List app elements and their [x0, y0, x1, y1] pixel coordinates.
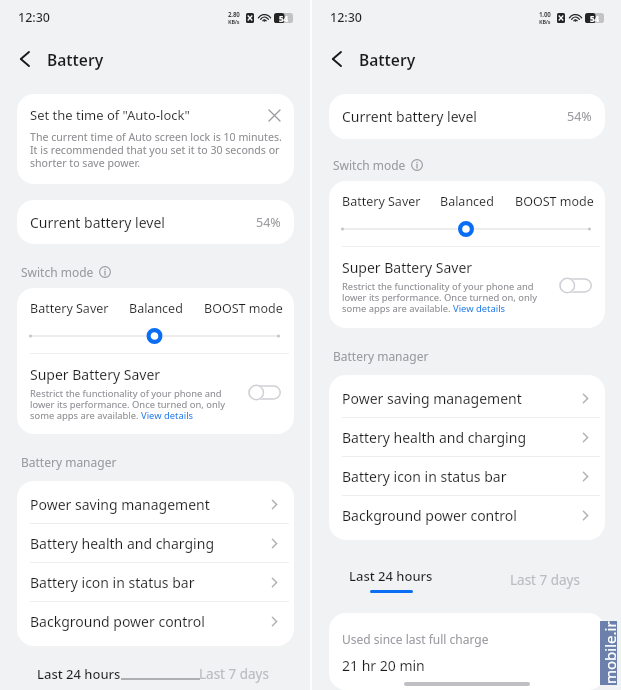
button[interactable]: Power saving management: [17, 485, 294, 524]
staticText: mobile.ir: [600, 621, 618, 684]
button[interactable]: Battery icon in status bar: [329, 457, 605, 496]
staticText: Restrict the functionality of your phone…: [30, 387, 225, 421]
button[interactable]: Back: [323, 45, 351, 73]
staticText: Background power control: [30, 612, 205, 631]
staticText: The current time of Auto screen lock is …: [30, 130, 282, 170]
button[interactable]: Super Battery Saver: [559, 277, 592, 294]
staticText: Last 24 hours: [349, 567, 433, 585]
button[interactable]: Last 7 days: [199, 665, 269, 683]
button[interactable]: Dismiss: [265, 106, 283, 124]
staticText: Restrict the functionality of your phone…: [342, 280, 537, 314]
button[interactable]: Super Battery Saver: [248, 384, 281, 401]
staticText: Battery health and charging: [30, 534, 214, 553]
button[interactable]: Current battery level: [17, 200, 294, 244]
staticText: 21 hr 20 min: [342, 656, 425, 675]
button[interactable]: Battery health and charging: [329, 418, 605, 457]
staticText: Battery manager: [21, 454, 117, 470]
button[interactable]: Back: [11, 45, 39, 73]
button[interactable]: Last 24 hours: [37, 665, 121, 683]
button[interactable]: Last 7 days: [510, 571, 580, 589]
staticText: KB/s: [539, 18, 551, 25]
button[interactable]: Battery health and charging: [17, 524, 294, 563]
button[interactable]: Battery icon in status bar: [17, 563, 294, 602]
staticText: 54%: [256, 214, 281, 231]
button[interactable]: Power saving management: [329, 379, 605, 418]
staticText: Super Battery Saver: [342, 258, 473, 277]
staticText: BOOST mode: [204, 300, 283, 317]
staticText: KB/s: [228, 18, 240, 25]
staticText: Battery icon in status bar: [342, 467, 507, 486]
staticText: 2.80: [228, 10, 240, 18]
staticText: Set the time of "Auto-lock": [30, 106, 190, 124]
staticText: Battery Saver: [342, 193, 421, 210]
staticText: 12:30: [18, 9, 51, 26]
staticText: Current battery level: [30, 213, 165, 232]
staticText: 12:30: [330, 9, 363, 26]
staticText: Power saving management: [342, 389, 522, 408]
staticText: Balanced: [440, 193, 494, 210]
staticText: Battery manager: [333, 348, 429, 364]
staticText: Current battery level: [342, 107, 477, 126]
staticText: 54: [590, 13, 600, 23]
staticText: Battery: [359, 49, 416, 70]
staticText: Used since last full charge: [342, 631, 489, 647]
staticText: Last 7 days: [510, 571, 580, 589]
staticText: Battery icon in status bar: [30, 573, 195, 592]
staticText: Background power control: [342, 506, 517, 525]
staticText: Balanced: [129, 300, 183, 317]
button[interactable]: Background power control: [329, 496, 605, 535]
staticText: Last 7 days: [199, 665, 269, 683]
staticText: Battery Saver: [30, 300, 109, 317]
staticText: Power saving management: [30, 495, 210, 514]
button[interactable]: Current battery level: [329, 94, 605, 139]
button[interactable]: Background power control: [17, 602, 294, 641]
button[interactable]: Last 24 hours: [349, 567, 433, 593]
staticText: Switch mode: [333, 157, 406, 173]
staticText: 54%: [567, 108, 592, 125]
staticText: Switch mode: [21, 264, 94, 280]
staticText: Battery: [47, 49, 104, 70]
staticText: 54: [279, 13, 289, 23]
staticText: 1.00: [539, 10, 551, 18]
staticText: Super Battery Saver: [30, 365, 161, 384]
staticText: BOOST mode: [515, 193, 594, 210]
staticText: Battery health and charging: [342, 428, 526, 447]
staticText: Last 24 hours: [37, 665, 121, 683]
